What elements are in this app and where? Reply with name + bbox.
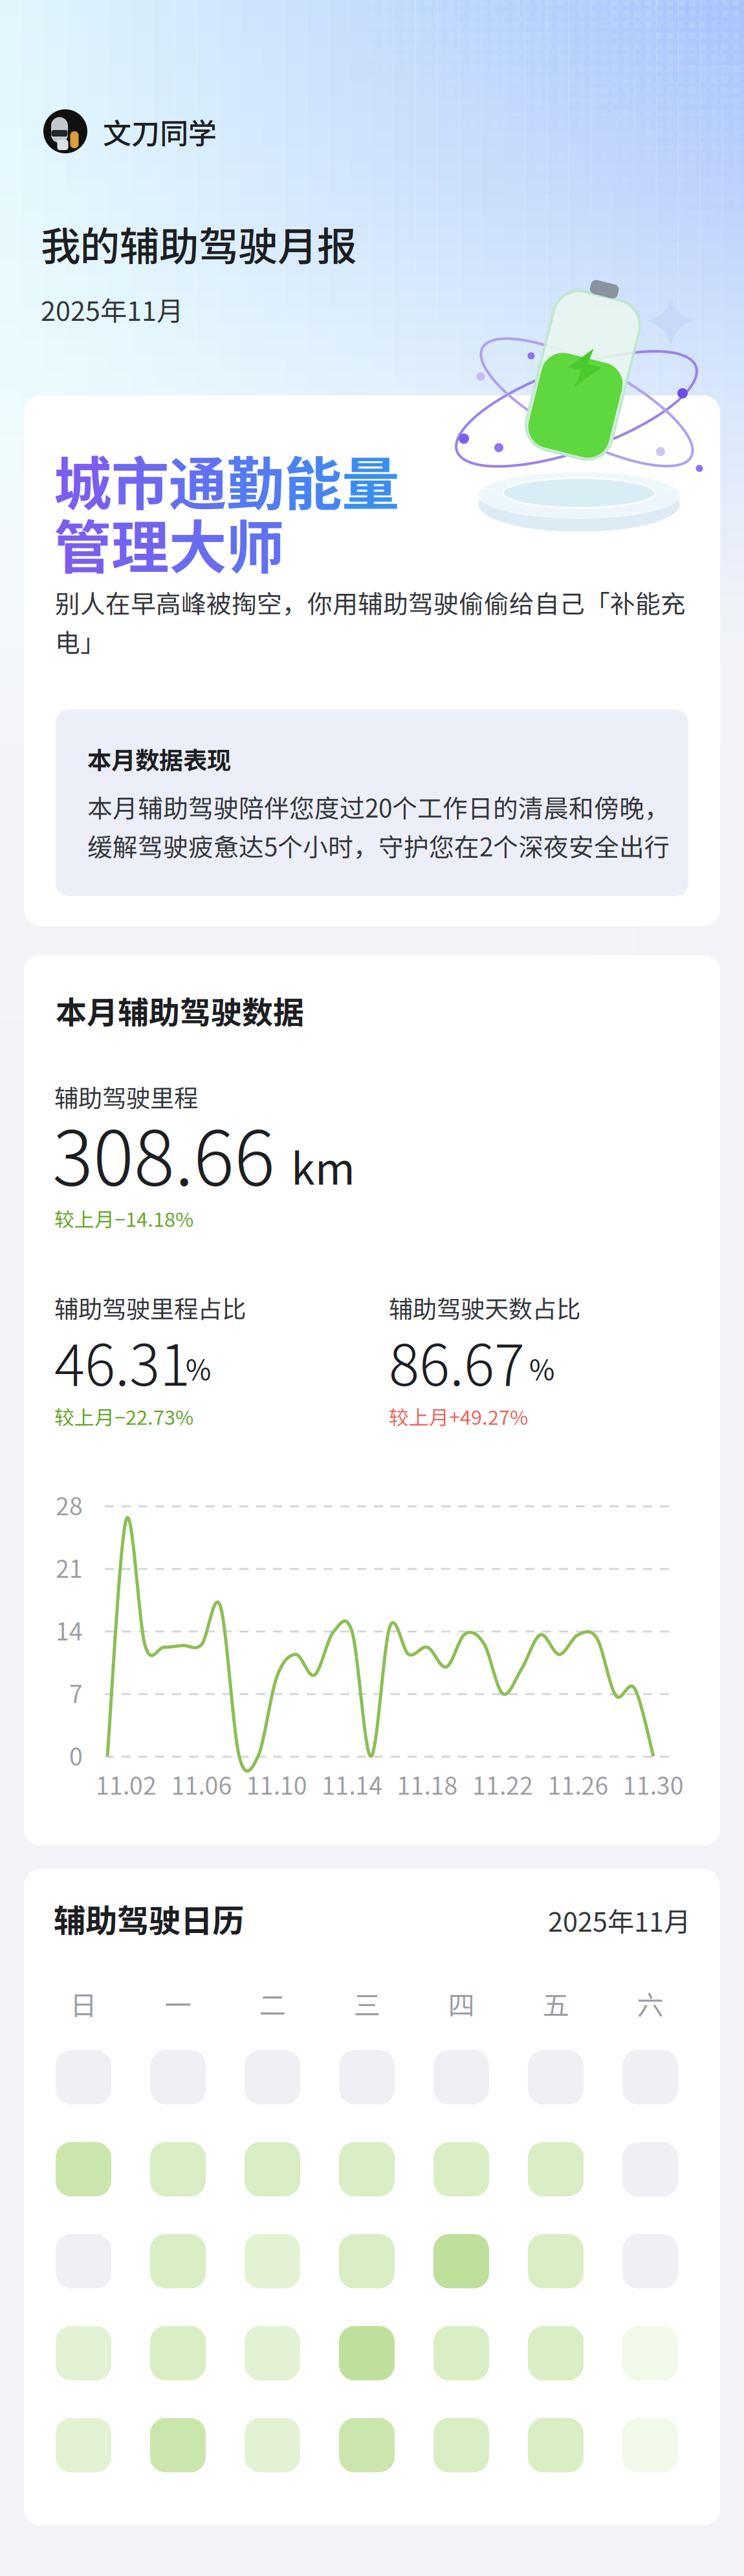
- staticText: 市: [111, 438, 169, 522]
- staticText: 11.06: [171, 1767, 232, 1802]
- staticText: 本月辅助驾驶数据: [56, 988, 304, 1033]
- staticText: 缓解驾驶疲惫达5个小时，守护您在2个深夜安全出行: [87, 827, 670, 864]
- staticText: 21: [56, 1550, 83, 1585]
- staticText: 通: [169, 438, 226, 522]
- staticText: 一: [165, 1984, 191, 2023]
- staticText: 电」: [55, 623, 105, 659]
- staticText: 理: [111, 501, 169, 585]
- staticText: 11.10: [246, 1767, 307, 1802]
- staticText: 我的辅助驾驶月报: [41, 215, 356, 272]
- staticText: 11.02: [96, 1767, 157, 1802]
- staticText: 11.22: [472, 1767, 533, 1802]
- staticText: 辅助驾驶日历: [54, 1895, 244, 1942]
- staticText: 六: [637, 1984, 663, 2023]
- staticText: 三: [354, 1984, 380, 2023]
- staticText: 辅助驾驶天数占比: [389, 1290, 580, 1325]
- staticText: 别人在早高峰被掏空，你用辅助驾驶偷偷给自己「补能充: [55, 584, 686, 620]
- staticText: 11.14: [322, 1767, 382, 1802]
- staticText: 管: [54, 501, 111, 585]
- staticText: 较上月−22.73%: [54, 1402, 193, 1431]
- staticText: 大: [169, 501, 226, 585]
- staticText: 城: [54, 438, 111, 522]
- button[interactable]: 文刀同学: [43, 102, 263, 161]
- staticText: %: [186, 1348, 211, 1388]
- staticText: 本月数据表现: [87, 741, 231, 776]
- staticText: 四: [448, 1984, 475, 2023]
- staticText: 辅助驾驶里程: [54, 1079, 198, 1114]
- staticText: 本月辅助驾驶陪伴您度过20个工作日的清晨和傍晚，: [87, 789, 670, 825]
- staticText: 86.67: [389, 1320, 525, 1402]
- staticText: 11.18: [397, 1767, 458, 1802]
- staticText: 师: [226, 501, 284, 585]
- staticText: 能: [284, 438, 342, 522]
- staticText: 量: [342, 438, 399, 522]
- staticText: 2025年11月: [41, 290, 183, 329]
- staticText: 11.30: [623, 1767, 684, 1802]
- staticText: 较上月+49.27%: [389, 1402, 528, 1431]
- staticText: 辅助驾驶里程占比: [54, 1290, 246, 1325]
- staticText: km: [291, 1135, 355, 1197]
- staticText: 46.31: [54, 1320, 190, 1402]
- staticText: 308.66: [52, 1097, 275, 1207]
- staticText: 28: [56, 1487, 83, 1522]
- staticText: 11.26: [548, 1767, 608, 1802]
- staticText: 五: [542, 1984, 569, 2023]
- staticText: 2025年11月: [548, 1901, 690, 1939]
- staticText: 7: [69, 1675, 83, 1710]
- staticText: 文刀同学: [103, 111, 217, 152]
- staticText: 日: [70, 1984, 97, 2023]
- staticText: 较上月−14.18%: [54, 1204, 193, 1233]
- staticText: 二: [259, 1984, 286, 2023]
- staticText: %: [529, 1348, 554, 1388]
- staticText: 14: [56, 1612, 83, 1647]
- staticText: 0: [69, 1738, 83, 1773]
- staticText: 勤: [226, 438, 284, 522]
